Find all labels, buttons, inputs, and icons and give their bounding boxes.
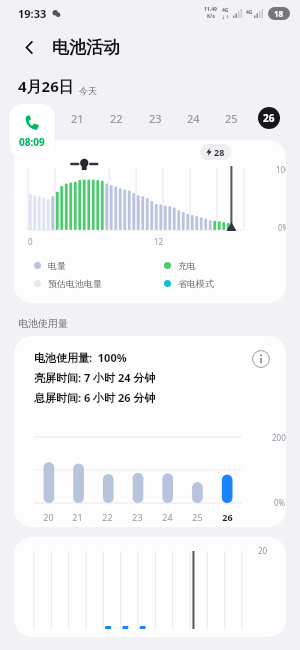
staticText: 26 [263, 111, 275, 125]
staticText: 22 [102, 511, 113, 523]
staticText: 21 [72, 511, 83, 523]
button[interactable]: 22 [97, 102, 136, 134]
button[interactable]: 21 [58, 102, 97, 134]
staticText: 0 [28, 236, 33, 247]
staticText: 今天 [79, 85, 97, 96]
button[interactable]: Back [14, 32, 44, 62]
staticText: 4G [246, 9, 253, 16]
staticText: 23 [149, 111, 162, 126]
staticText: 18 [274, 8, 284, 19]
staticText: ↓↑ [221, 14, 230, 20]
staticText: 电池使用量: 100% [34, 350, 127, 365]
staticText: 26 [222, 511, 233, 523]
staticText: 08:09 [19, 135, 45, 149]
staticText: 19:33 [18, 6, 47, 21]
staticText: 预估电池电量 [48, 278, 102, 289]
staticText: 11.49 [204, 6, 217, 13]
staticText: 4月26日 [18, 76, 74, 96]
staticText: 息屏时间: 6 小时 26 分钟 [34, 390, 156, 405]
button[interactable]: 25 [212, 102, 250, 134]
staticText: 20 [258, 545, 268, 556]
staticText: 21 [71, 111, 84, 126]
staticText: 100 [276, 164, 286, 175]
button[interactable]: 08:09 [10, 104, 54, 158]
staticText: 20 [43, 511, 54, 523]
staticText: 电池活动 [52, 37, 120, 58]
button[interactable]: 23 [136, 102, 174, 134]
button[interactable]: 26 [258, 107, 280, 129]
staticText: 28 [214, 146, 225, 158]
staticText: 充电 [178, 260, 196, 271]
staticText: 省电模式 [178, 278, 214, 289]
staticText: 0% [274, 497, 286, 508]
button[interactable]: 24 [174, 102, 212, 134]
button[interactable]: Info [252, 350, 270, 368]
staticText: 0% [278, 222, 286, 233]
staticText: 电量 [48, 260, 66, 271]
staticText: 亮屏时间: 7 小时 24 分钟 [34, 370, 156, 385]
staticText: 12 [154, 236, 164, 247]
staticText: 23 [132, 511, 143, 523]
staticText: K/s [207, 13, 215, 20]
staticText: 电池使用量 [18, 317, 68, 330]
staticText: 24 [162, 511, 173, 523]
staticText: 200 [272, 432, 286, 443]
staticText: 4G [222, 7, 229, 14]
staticText: 22 [110, 111, 123, 126]
staticText: 25 [225, 111, 238, 126]
staticText: 24 [187, 111, 200, 126]
staticText: 25 [192, 511, 203, 523]
